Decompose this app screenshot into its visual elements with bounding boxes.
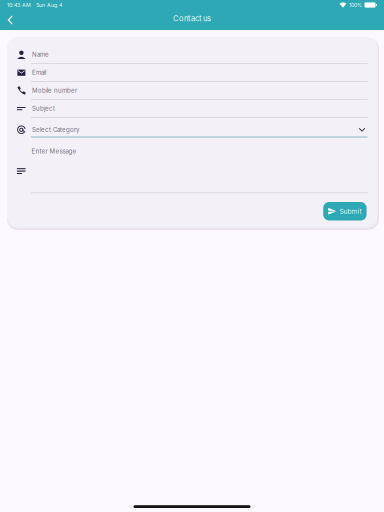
button[interactable]: Email	[16, 64, 368, 82]
button[interactable]: Submit	[323, 202, 367, 220]
button[interactable]: Select Category	[16, 118, 368, 139]
button[interactable]: Enter Message	[16, 139, 368, 194]
staticText: Submit	[340, 207, 362, 215]
staticText: 100%	[349, 2, 362, 8]
button[interactable]: Back	[0, 10, 21, 30]
staticText: Enter Message	[31, 147, 76, 155]
staticText: Contact us	[173, 14, 211, 23]
staticText: 10:43 AM	[7, 2, 31, 8]
staticText: Mobile number	[32, 87, 77, 94]
staticText: Name	[32, 51, 49, 58]
button[interactable]: Mobile number	[16, 82, 368, 100]
staticText: Subject	[32, 105, 55, 112]
button[interactable]: Subject	[16, 100, 368, 118]
button[interactable]: Name	[16, 46, 368, 64]
staticText: Email	[32, 69, 46, 76]
staticText: Sun Aug 4	[36, 2, 62, 8]
staticText: Select Category	[32, 126, 79, 133]
